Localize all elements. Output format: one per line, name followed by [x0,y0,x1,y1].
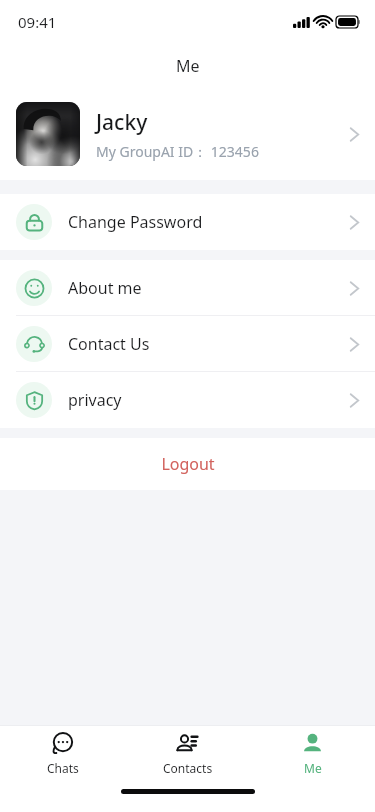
button[interactable]: Contact Us [0,316,375,372]
staticText: About me [68,277,350,299]
button[interactable]: Change Password [0,194,375,250]
staticText: Chats [47,760,79,776]
button[interactable]: About me [0,260,375,316]
staticText: Me [176,55,200,77]
staticText: Me [304,760,322,776]
staticText: Jacky [96,108,148,137]
staticText: My GroupAI ID： 123456 [96,142,259,161]
button[interactable]: Jacky [0,88,375,180]
button[interactable]: Contacts [125,726,250,782]
staticText: Change Password [68,211,350,233]
button[interactable]: privacy [0,372,375,428]
staticText: Contacts [163,760,213,776]
staticText: 09:41 [18,12,57,32]
staticText: privacy [68,389,350,411]
button[interactable]: Chats [0,726,125,782]
button[interactable]: Me [250,726,375,782]
staticText: Contact Us [68,333,350,355]
button[interactable]: Logout [0,438,375,490]
staticText: Logout [161,453,215,475]
